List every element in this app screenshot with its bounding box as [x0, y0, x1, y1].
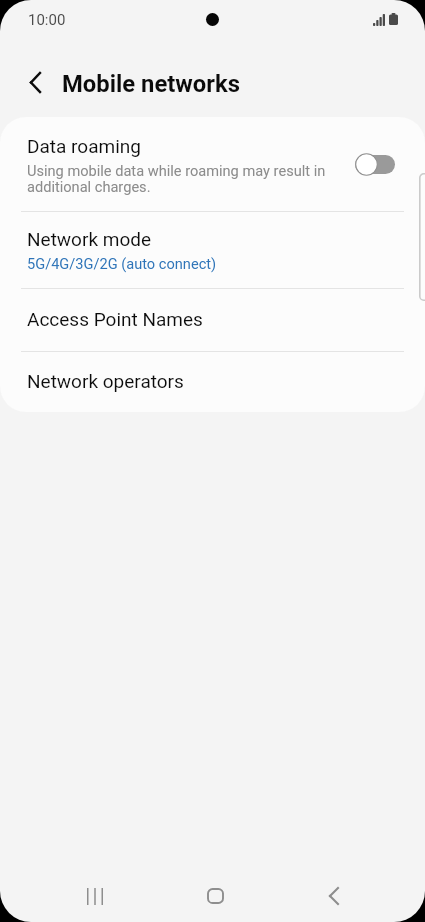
button[interactable]: Back	[314, 876, 354, 916]
button[interactable]: Network mode	[0, 212, 425, 288]
button[interactable]: Data roaming switch, off	[355, 153, 395, 176]
staticText: Using mobile data while roaming may resu…	[27, 163, 332, 195]
button[interactable]: Access Point Names	[0, 289, 425, 351]
button[interactable]: Network operators	[0, 352, 425, 412]
staticText: 10:00	[28, 11, 66, 29]
staticText: Access Point Names	[27, 308, 203, 330]
staticText: Network operators	[27, 370, 184, 392]
button[interactable]: Home	[195, 876, 235, 916]
button[interactable]: Data roaming	[0, 117, 425, 211]
staticText: 5G/4G/3G/2G (auto connect)	[27, 255, 217, 272]
staticText: Data roaming	[27, 135, 141, 157]
button[interactable]: Navigate up	[14, 61, 56, 103]
button[interactable]: Recent apps	[75, 876, 115, 916]
staticText: Mobile networks	[62, 70, 240, 98]
staticText: Network mode	[27, 228, 152, 250]
